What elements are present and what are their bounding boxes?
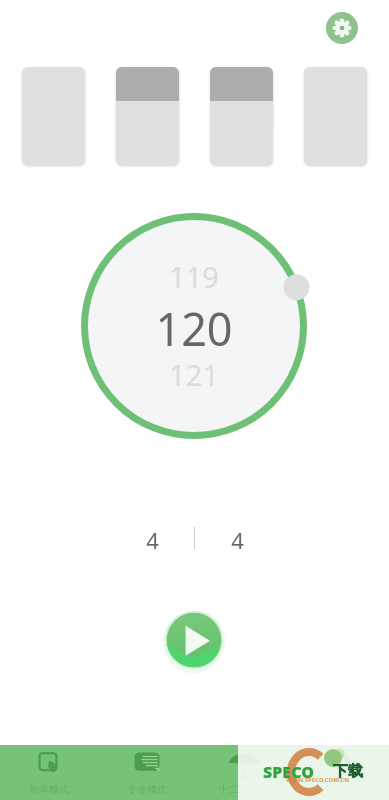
staticText: 十二平均律 [219, 783, 269, 796]
staticText: 4 [231, 525, 244, 555]
button[interactable]: Beat [116, 67, 179, 165]
staticText: 专业模式 [127, 783, 167, 796]
staticText: 4 [146, 525, 159, 555]
staticText: 初学模式 [29, 783, 69, 796]
staticText: 120 [155, 298, 233, 359]
staticText: WWW.SPECO.COM.CN [286, 776, 350, 784]
button[interactable]: Play [165, 611, 223, 669]
button[interactable]: 专业模式 [98, 745, 195, 800]
button[interactable]: 初学模式 [0, 745, 98, 800]
button[interactable]: 十二平均律 [195, 745, 292, 800]
button[interactable]: 4 [132, 524, 172, 556]
button[interactable]: Beat [210, 67, 273, 165]
button[interactable]: Settings [326, 12, 358, 44]
button[interactable]: 节拍器 [292, 745, 389, 800]
staticText: 119 [169, 257, 219, 296]
staticText: 121 [169, 355, 219, 394]
staticText: SPECO [263, 761, 314, 783]
button[interactable]: 4 [217, 524, 257, 556]
staticText: 下载 [333, 762, 363, 781]
